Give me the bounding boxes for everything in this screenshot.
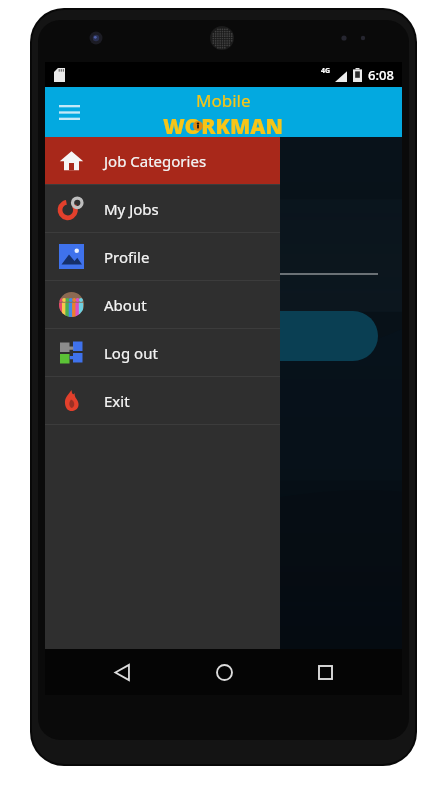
staticText: Search jobs by categories: [67, 207, 222, 225]
staticText: About: [104, 295, 147, 315]
button[interactable]: Open navigation drawer: [48, 91, 90, 133]
button[interactable]: Profile: [45, 233, 280, 280]
staticText: 6:08: [368, 66, 394, 84]
staticText: Exit: [104, 391, 130, 411]
staticText: Log out: [104, 343, 158, 363]
button[interactable]: Recent apps: [301, 649, 349, 695]
button[interactable]: About: [45, 281, 280, 328]
staticText: Mobile: [196, 89, 251, 112]
button[interactable]: Back: [98, 649, 146, 695]
staticText: WORKMAN: [163, 112, 284, 139]
button[interactable]: Job Categories: [45, 137, 280, 184]
staticText: Profile: [104, 247, 150, 267]
button[interactable]: Home: [200, 649, 248, 695]
staticText: Job Categories: [104, 151, 207, 171]
staticText: SEARCH BY CATEGORY: [67, 175, 274, 201]
staticText: 4G: [321, 66, 331, 76]
button[interactable]: Exit: [45, 377, 280, 424]
button[interactable]: SEARCH: [67, 311, 378, 361]
staticText: My Jobs: [104, 199, 159, 219]
button[interactable]: Log out: [45, 329, 280, 376]
button[interactable]: My Jobs: [45, 185, 280, 232]
